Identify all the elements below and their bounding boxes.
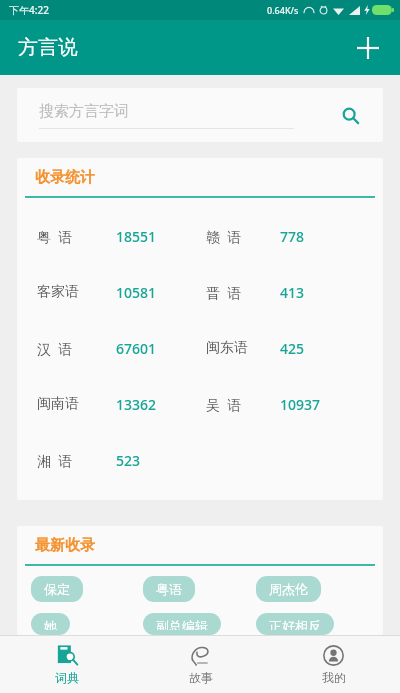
- staticText: 正好相反: [269, 618, 321, 630]
- button[interactable]: 保定: [31, 576, 83, 602]
- staticText: 下午4:22: [9, 3, 49, 17]
- staticText: 故事: [189, 670, 213, 685]
- staticText: 吴 语: [206, 395, 242, 414]
- staticText: 425: [280, 339, 305, 358]
- staticText: 0.64K/s: [267, 4, 299, 16]
- staticText: 413: [280, 283, 305, 302]
- staticText: 副总编辑: [156, 618, 208, 630]
- button[interactable]: 正好相反: [256, 613, 334, 635]
- staticText: 最新收录: [35, 536, 95, 555]
- button[interactable]: 她: [31, 613, 70, 635]
- button[interactable]: 词典: [0, 636, 134, 693]
- staticText: 搜索方言字词: [39, 102, 129, 121]
- staticText: 18551: [116, 227, 157, 246]
- button[interactable]: 周杰伦: [256, 576, 321, 602]
- staticText: 10937: [280, 395, 321, 414]
- staticText: 客家语: [37, 283, 79, 301]
- staticText: 湘 语: [37, 451, 73, 470]
- button[interactable]: 粤语: [143, 576, 195, 602]
- staticText: 词典: [55, 670, 79, 685]
- staticText: 粤 语: [37, 227, 73, 246]
- staticText: 周杰伦: [269, 581, 308, 597]
- staticText: 晋 语: [206, 283, 242, 302]
- staticText: 10581: [116, 283, 157, 302]
- staticText: 汉 语: [37, 339, 73, 358]
- staticText: 67601: [116, 339, 157, 358]
- staticText: 闽南语: [37, 395, 79, 413]
- button[interactable]: 故事: [134, 636, 267, 693]
- staticText: 闽东语: [206, 339, 248, 357]
- staticText: 523: [116, 451, 141, 470]
- button[interactable]: 搜索方言字词: [17, 88, 383, 142]
- staticText: 13362: [116, 395, 157, 414]
- staticText: 778: [280, 227, 305, 246]
- staticText: 保定: [44, 581, 70, 597]
- button[interactable]: Add: [346, 26, 390, 70]
- staticText: 赣 语: [206, 227, 242, 246]
- button[interactable]: 我的: [267, 636, 400, 693]
- staticText: 粤语: [156, 581, 182, 597]
- staticText: 她: [44, 618, 57, 630]
- staticText: 我的: [322, 670, 346, 685]
- staticText: 方言说: [18, 35, 78, 60]
- staticText: 收录统计: [35, 168, 95, 187]
- button[interactable]: 副总编辑: [143, 613, 221, 635]
- button[interactable]: Search: [333, 98, 367, 132]
